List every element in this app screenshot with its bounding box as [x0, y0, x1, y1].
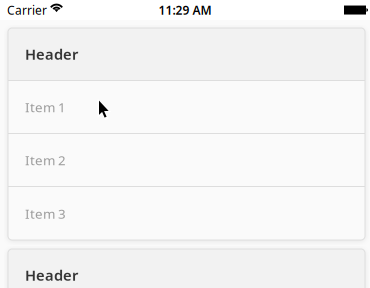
button[interactable]: Item 3 — [8, 187, 365, 240]
staticText: Item 1 — [25, 98, 66, 116]
staticText: Item 3 — [25, 205, 66, 222]
button[interactable]: Item 2 — [8, 134, 365, 186]
staticText: Carrier — [7, 2, 47, 18]
staticText: Header — [25, 265, 78, 285]
button[interactable]: Item 1 — [8, 81, 365, 133]
staticText: 11:29 AM — [158, 2, 211, 18]
staticText: Header — [25, 44, 78, 64]
staticText: Item 2 — [25, 151, 66, 169]
